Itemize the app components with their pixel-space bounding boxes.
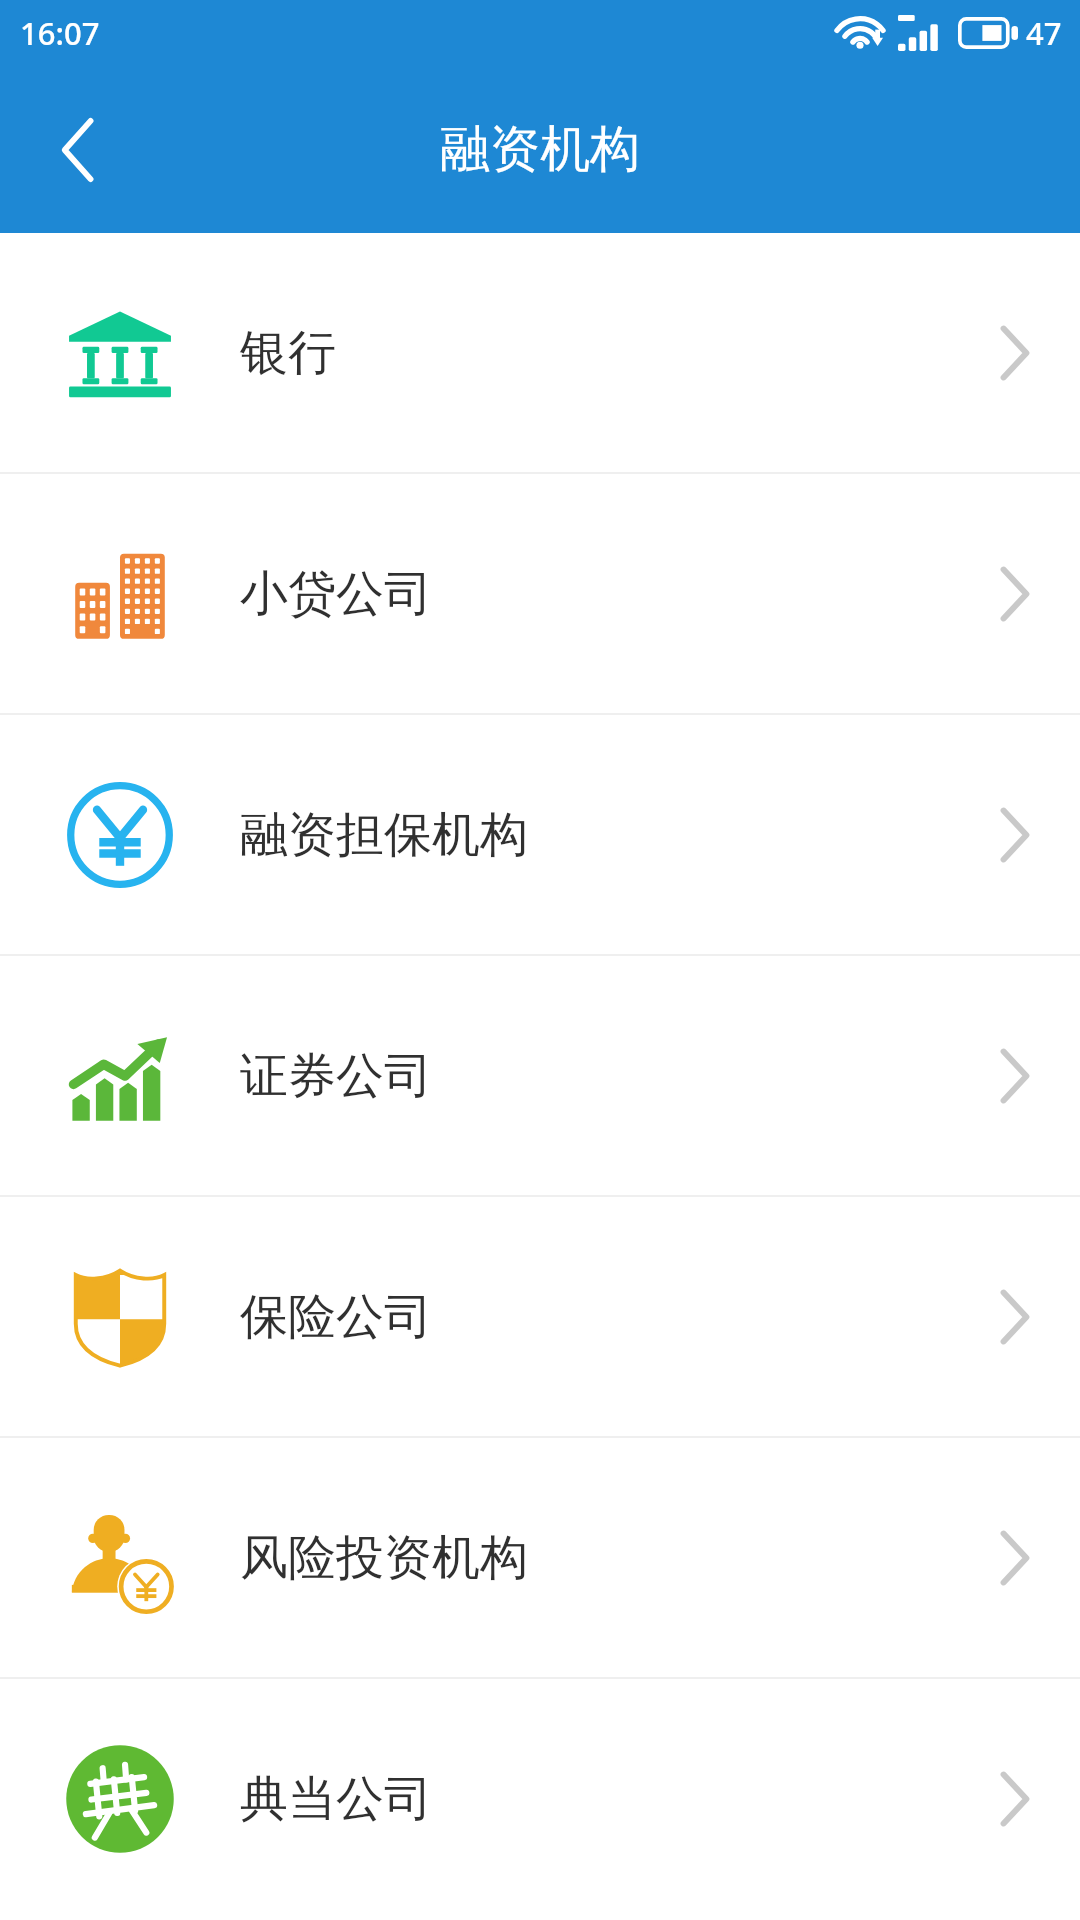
button[interactable]: 银行 [0, 233, 1080, 472]
button[interactable]: 小贷公司 [0, 474, 1080, 713]
staticText: 47 [1026, 12, 1062, 54]
button[interactable]: 证券公司 [0, 956, 1080, 1195]
staticText: 证券公司 [240, 1046, 432, 1106]
staticText: 融资机构 [440, 118, 640, 181]
button[interactable]: 融资担保机构 [0, 715, 1080, 954]
staticText: 小贷公司 [240, 564, 432, 624]
button[interactable]: Back [0, 66, 155, 233]
button[interactable]: 典当公司 [0, 1679, 1080, 1918]
button[interactable]: 保险公司 [0, 1197, 1080, 1436]
staticText: 银行 [240, 323, 336, 383]
staticText: 典当公司 [240, 1769, 432, 1829]
button[interactable]: 风险投资机构 [0, 1438, 1080, 1677]
staticText: 融资担保机构 [240, 805, 528, 865]
staticText: 16:07 [20, 12, 100, 54]
staticText: 风险投资机构 [240, 1528, 528, 1588]
staticText: 保险公司 [240, 1287, 432, 1347]
